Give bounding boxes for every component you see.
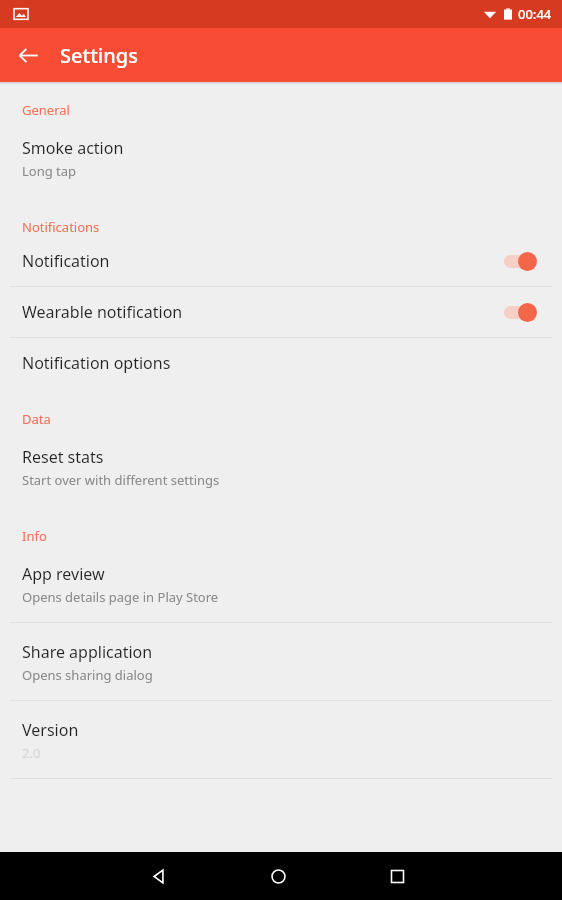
button[interactable]: Notification xyxy=(0,236,562,286)
staticText: Smoke action xyxy=(22,137,124,159)
button[interactable]: Share application xyxy=(0,623,562,700)
staticText: Share application xyxy=(22,641,153,663)
staticText: Settings xyxy=(60,42,138,69)
staticText: Reset stats xyxy=(22,446,104,468)
staticText: Opens details page in Play Store xyxy=(22,588,219,606)
button[interactable]: Version xyxy=(0,701,562,778)
button[interactable]: Recents xyxy=(373,852,421,900)
button[interactable]: Back xyxy=(134,852,182,900)
button[interactable]: Smoke action xyxy=(0,119,562,196)
staticText: Wearable notification xyxy=(22,301,504,323)
staticText: General xyxy=(22,101,70,119)
staticText: Data xyxy=(22,410,51,428)
button[interactable]: Wearable notification xyxy=(0,287,562,337)
staticText: Info xyxy=(22,527,47,545)
staticText: Version xyxy=(22,719,79,741)
staticText: 2.0 xyxy=(22,744,41,762)
button[interactable]: Notification options xyxy=(0,338,562,388)
button[interactable]: Back xyxy=(8,35,48,75)
staticText: Long tap xyxy=(22,162,77,180)
staticText: Notification xyxy=(22,250,504,272)
button[interactable]: Reset stats xyxy=(0,428,562,505)
staticText: Start over with different settings xyxy=(22,471,220,489)
button[interactable]: App review xyxy=(0,545,562,622)
staticText: Notification options xyxy=(22,352,171,374)
staticText: App review xyxy=(22,563,105,585)
staticText: Opens sharing dialog xyxy=(22,666,153,684)
staticText: 00:44 xyxy=(518,5,552,23)
button[interactable]: Home xyxy=(254,852,302,900)
staticText: Notifications xyxy=(22,218,100,236)
